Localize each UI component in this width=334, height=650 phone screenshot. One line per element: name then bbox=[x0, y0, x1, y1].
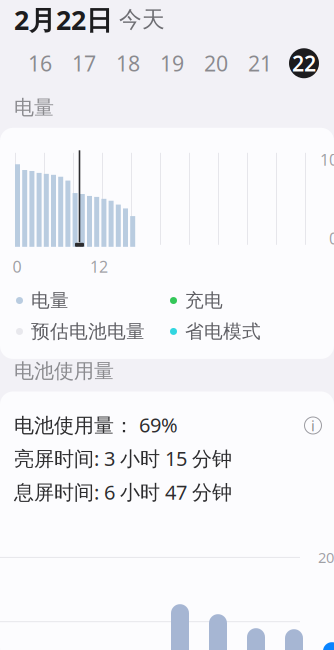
staticText: 10 bbox=[320, 149, 334, 170]
staticText: 22 bbox=[292, 49, 316, 77]
staticText: 18 bbox=[116, 49, 140, 77]
staticText: 20 bbox=[204, 49, 228, 77]
staticText: 2月22日 bbox=[14, 2, 113, 37]
staticText: 今天 bbox=[119, 6, 165, 33]
staticText: 电量 bbox=[14, 95, 54, 120]
staticText: 预估电池电量 bbox=[31, 320, 145, 343]
button[interactable]: 21 bbox=[238, 47, 282, 79]
staticText: 电池使用量 bbox=[14, 359, 114, 383]
staticText: 20 bbox=[318, 548, 334, 567]
staticText: 亮屏时间: 3 小时 15 分钟 bbox=[14, 445, 232, 472]
staticText: 12 bbox=[90, 256, 108, 277]
staticText: 省电模式 bbox=[185, 320, 261, 343]
button[interactable]: 22 bbox=[282, 47, 326, 79]
staticText: 16 bbox=[28, 49, 52, 77]
staticText: 17 bbox=[72, 49, 96, 77]
staticText: 19 bbox=[160, 49, 184, 77]
staticText: 21 bbox=[248, 49, 272, 77]
button[interactable]: 16 bbox=[18, 47, 62, 79]
staticText: i bbox=[311, 416, 315, 435]
staticText: 电量 bbox=[31, 289, 69, 312]
staticText: 0 bbox=[12, 256, 21, 277]
staticText: 充电 bbox=[185, 289, 223, 312]
button[interactable]: 19 bbox=[150, 47, 194, 79]
staticText: 电池使用量： 69% bbox=[14, 411, 178, 438]
button[interactable]: 20 bbox=[194, 47, 238, 79]
button[interactable]: 18 bbox=[106, 47, 150, 79]
staticText: 0 bbox=[329, 228, 334, 249]
button[interactable]: 电池使用量说明 bbox=[299, 411, 327, 439]
button[interactable]: 17 bbox=[62, 47, 106, 79]
staticText: 息屏时间: 6 小时 47 分钟 bbox=[14, 479, 232, 505]
